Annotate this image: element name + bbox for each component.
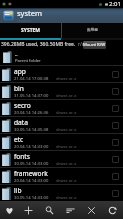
staticText: lib	[14, 186, 22, 195]
button[interactable]: Refresh	[102, 201, 123, 219]
button[interactable]: etc	[0, 134, 123, 150]
button[interactable]: framework	[0, 168, 123, 184]
button[interactable]: Select etc	[112, 139, 119, 146]
staticText: drwxr-xr-x	[56, 127, 77, 133]
button[interactable]: Select secro	[112, 105, 119, 112]
button[interactable]: Favorites	[0, 201, 18, 219]
staticText: SYSTEM	[21, 27, 41, 34]
button[interactable]: ..	[0, 49, 123, 65]
staticText: app	[14, 67, 26, 76]
staticText: 20.04.14 14:33:00	[14, 178, 49, 184]
staticText: framework	[14, 169, 48, 178]
button[interactable]: Close	[81, 201, 102, 219]
staticText: 20.04.14 14:26:36	[14, 110, 49, 116]
staticText: 20.04.14 14:33:00	[14, 144, 49, 150]
button[interactable]: Select lib	[112, 190, 119, 197]
button[interactable]: lib	[0, 185, 123, 201]
staticText: Mount R/W	[83, 42, 106, 48]
staticText: bin	[14, 84, 24, 93]
button[interactable]: Sort	[60, 201, 81, 219]
staticText: drwxr-xr-x	[56, 178, 77, 184]
button[interactable]: data	[0, 117, 123, 133]
button[interactable]: Select data	[112, 122, 119, 129]
staticText: etc	[14, 135, 24, 144]
staticText: Parent folder	[15, 58, 41, 64]
staticText: 30.05.14 14:33:00	[14, 195, 49, 201]
button[interactable]: Add	[18, 201, 39, 219]
button[interactable]: secro	[0, 100, 123, 116]
staticText: data	[14, 118, 28, 127]
staticText: drwxr-xr-x	[56, 76, 77, 82]
staticText: drwxr-xr-x	[56, 195, 77, 201]
staticText: ..	[15, 51, 18, 58]
staticText: 应用程	[87, 28, 98, 33]
staticText: 30.05.14 14:35:38	[14, 127, 49, 133]
staticText: /system	[17, 18, 32, 23]
button[interactable]: SYSTEM	[0, 23, 61, 38]
staticText: 396.28MB used, 360.50MB free.	[1, 41, 76, 48]
button[interactable]: bin	[0, 83, 123, 99]
staticText: 31.05.14 14:37:00	[14, 93, 49, 99]
staticText: drwxr-xr-x	[56, 161, 77, 167]
button[interactable]: Select bin	[112, 88, 119, 95]
staticText: r/o	[78, 41, 85, 48]
button[interactable]: Mount R/W	[83, 41, 106, 49]
staticText: drwxr-xr-x	[56, 144, 77, 150]
button[interactable]: Select framework	[112, 173, 119, 180]
button[interactable]: 应用程	[62, 23, 123, 38]
button[interactable]: Search	[39, 201, 60, 219]
staticText: 2:01	[109, 0, 121, 8]
staticText: 21.04.14 17:00:38	[14, 76, 49, 82]
button[interactable]: Select fonts	[112, 156, 119, 163]
button[interactable]: Select app	[112, 71, 119, 78]
button[interactable]: fonts	[0, 151, 123, 167]
staticText: secro	[14, 101, 31, 110]
staticText: fonts	[14, 152, 30, 161]
staticText: drwxr-xr-x	[56, 93, 77, 99]
staticText: system	[17, 8, 42, 18]
button[interactable]: app	[0, 66, 123, 82]
staticText: 30.05.14 14:33:00	[14, 161, 49, 167]
staticText: drwxr-xr-x	[56, 110, 77, 116]
